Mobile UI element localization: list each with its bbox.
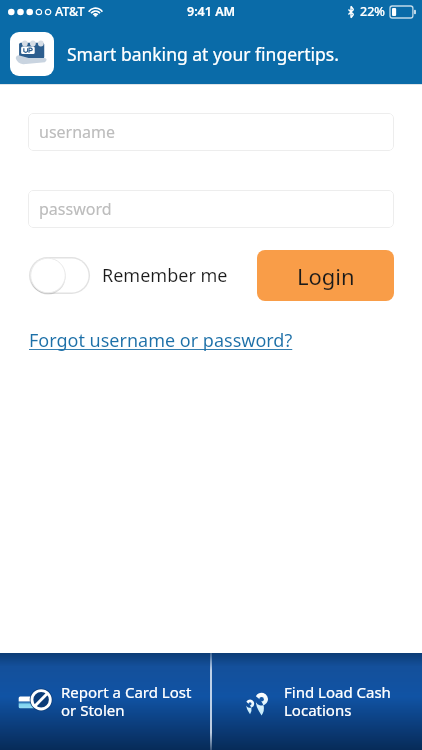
staticText: 22% — [360, 3, 385, 20]
staticText: 9:41 AM — [187, 3, 236, 20]
button[interactable]: username — [28, 113, 394, 151]
staticText: Find Load Cash Locations — [284, 682, 391, 721]
staticText: Forgot username or password? — [29, 328, 297, 353]
button[interactable]: Remember me toggle — [29, 257, 90, 294]
staticText: Smart banking at your fingertips. — [67, 42, 339, 66]
button[interactable]: password — [28, 190, 394, 228]
staticText: Remember me — [102, 263, 228, 288]
staticText: AT&T — [55, 3, 85, 20]
staticText: Report a Card Lost or Stolen — [61, 682, 192, 721]
button[interactable]: UP app logo — [10, 32, 54, 76]
button[interactable]: Find Load Cash Locations — [212, 653, 422, 750]
button[interactable]: Login — [257, 250, 394, 301]
staticText: password — [39, 198, 112, 220]
staticText: username — [39, 121, 116, 143]
button[interactable]: Forgot username or password? — [29, 328, 297, 353]
button[interactable]: Report a Card Lost or Stolen — [0, 653, 210, 750]
staticText: Login — [297, 261, 355, 291]
